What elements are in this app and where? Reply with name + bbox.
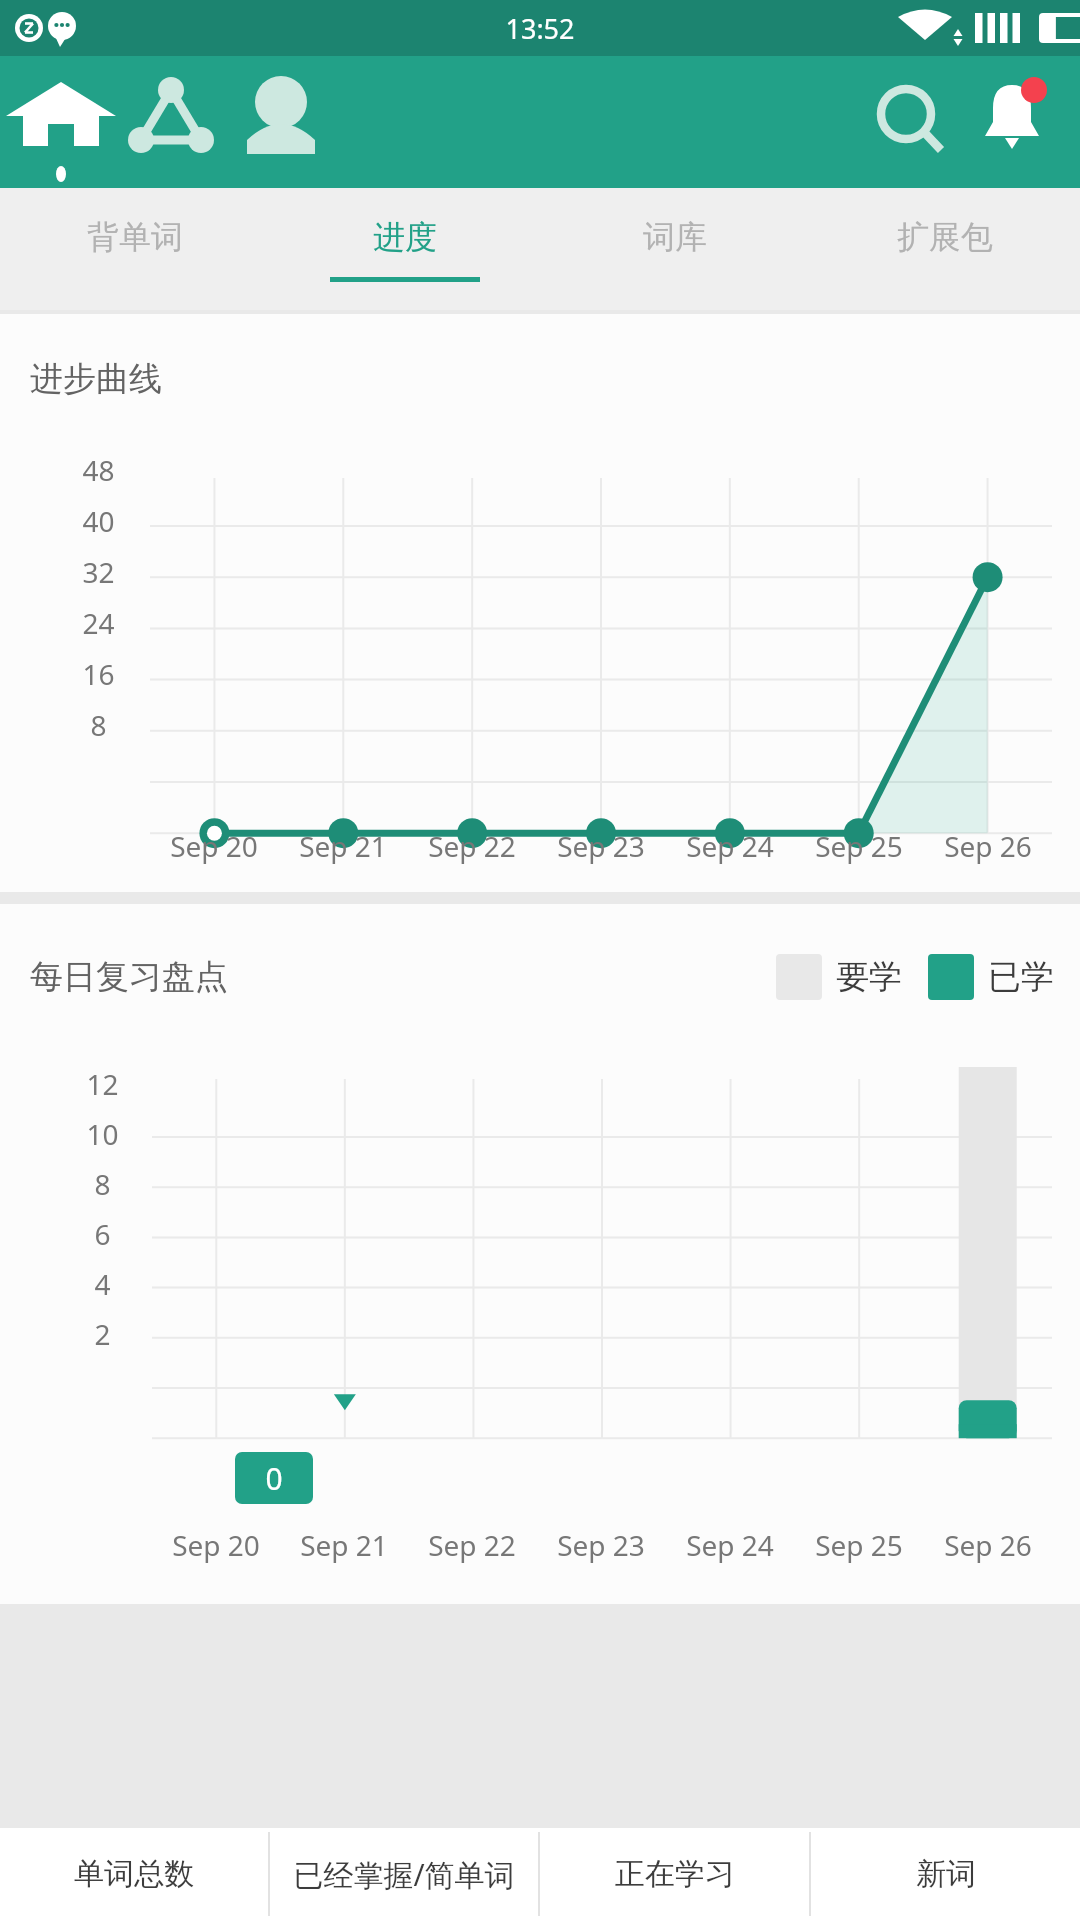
staticText: 48 [82, 451, 115, 489]
staticText: Sep 20 [170, 827, 258, 865]
staticText: 进度 [373, 217, 437, 257]
staticText: Sep 21 [299, 827, 387, 865]
staticText: 24 [82, 604, 115, 642]
staticText: Sep 24 [686, 827, 774, 865]
staticText: 12 [86, 1065, 119, 1103]
staticText: 背单词 [87, 217, 183, 257]
button[interactable]: Profile [238, 62, 324, 182]
staticText: 40 [82, 502, 115, 540]
button[interactable]: Notifications [966, 62, 1058, 182]
staticText: Sep 20 [172, 1526, 260, 1564]
button[interactable]: 新词 [811, 1828, 1080, 1920]
button[interactable]: Home [18, 62, 104, 182]
staticText: 8 [90, 706, 107, 744]
staticText: Sep 26 [944, 827, 1032, 865]
staticText: Sep 22 [428, 827, 516, 865]
staticText: Sep 23 [557, 1526, 645, 1564]
staticText: 单词总数 [74, 1855, 194, 1893]
staticText: 6 [94, 1215, 111, 1253]
staticText: 0 [265, 1458, 283, 1499]
button[interactable]: 扩展包 [810, 188, 1080, 310]
staticText: 4 [94, 1265, 111, 1303]
staticText: Sep 24 [686, 1526, 774, 1564]
staticText: Sep 25 [815, 1526, 903, 1564]
staticText: Sep 22 [428, 1526, 516, 1564]
staticText: 32 [82, 553, 115, 591]
staticText: 进步曲线 [30, 358, 162, 400]
staticText: 新词 [916, 1855, 976, 1893]
button[interactable]: Search [864, 62, 956, 182]
button[interactable]: 单词总数 [0, 1828, 268, 1920]
button[interactable]: 已经掌握/简单词 [270, 1828, 538, 1920]
staticText: Sep 21 [300, 1526, 388, 1564]
staticText: 8 [94, 1165, 111, 1203]
button[interactable]: 词库 [540, 188, 810, 310]
button[interactable]: 正在学习 [540, 1828, 809, 1920]
staticText: 已经掌握/简单词 [293, 1854, 515, 1895]
staticText: 要学 [836, 956, 902, 998]
staticText: 2 [94, 1315, 111, 1353]
staticText: 每日复习盘点 [30, 956, 228, 998]
staticText: Sep 26 [944, 1526, 1032, 1564]
staticText: 13:52 [505, 10, 575, 47]
staticText: 16 [82, 655, 115, 693]
button[interactable]: 进度 [270, 188, 540, 310]
staticText: Sep 25 [815, 827, 903, 865]
staticText: 10 [86, 1115, 119, 1153]
button[interactable]: 背单词 [0, 188, 270, 310]
staticText: Sep 23 [557, 827, 645, 865]
button[interactable]: Community [128, 62, 214, 182]
staticText: 词库 [643, 217, 707, 257]
staticText: 扩展包 [897, 217, 993, 257]
staticText: 已学 [988, 956, 1054, 998]
staticText: 正在学习 [615, 1855, 735, 1893]
